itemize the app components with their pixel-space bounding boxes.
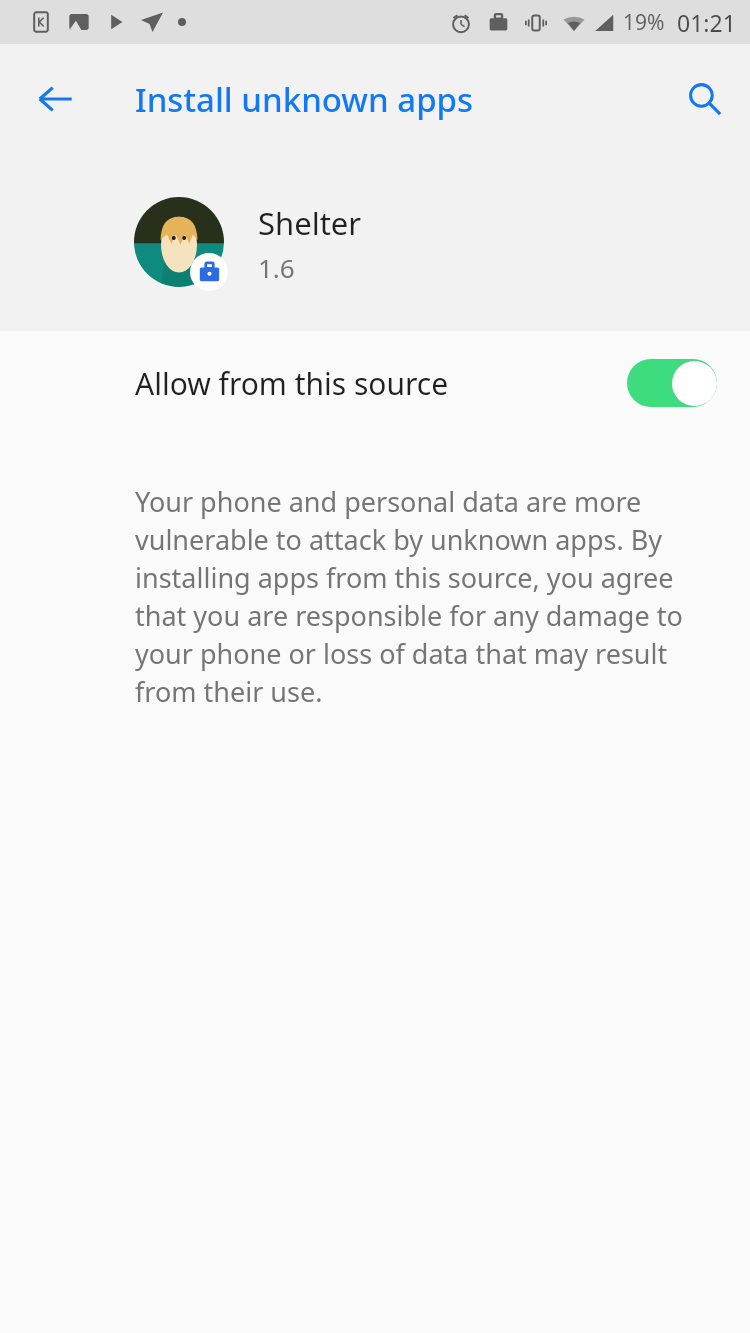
staticText: 1.6 [258,250,295,285]
staticText: Install unknown apps [135,77,474,122]
staticText: 01:21 [677,7,736,38]
staticText: Allow from this source [135,363,449,404]
staticText: Your phone and personal data are more vu… [135,483,728,710]
button[interactable]: Search [672,66,738,132]
staticText: 19% [623,8,665,37]
button[interactable]: Allow from this source [0,331,750,435]
button[interactable]: Back [22,66,88,132]
staticText: Shelter [258,202,362,244]
